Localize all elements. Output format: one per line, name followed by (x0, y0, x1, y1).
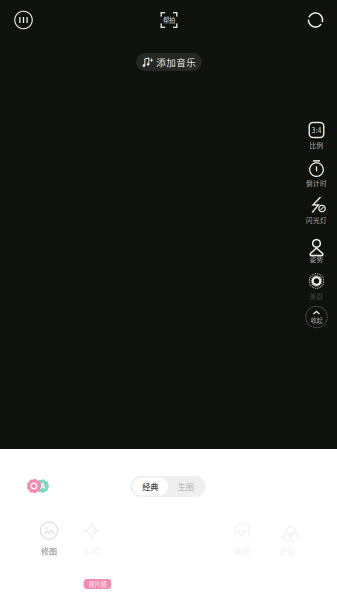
button[interactable]: 倒计时 (297, 158, 335, 190)
staticText: 姿势 (309, 254, 323, 264)
staticText: 生图 (178, 481, 194, 492)
staticText: 比例 (309, 140, 323, 150)
staticText: 美颜 (234, 545, 250, 557)
staticText: 3:4 (311, 125, 321, 135)
button[interactable]: 收起 (301, 303, 331, 331)
staticText: 闪光灯 (306, 215, 327, 225)
staticText: 收起 (310, 315, 322, 324)
staticText: 修图 (41, 545, 57, 557)
button[interactable]: 生图 (168, 478, 203, 495)
staticText: 倒计时 (306, 178, 327, 188)
staticText: A (40, 482, 45, 491)
button[interactable]: 帮拍 (150, 3, 188, 37)
button[interactable]: 添加音乐 (136, 53, 202, 71)
button[interactable]: Beauty settings (4, 3, 42, 37)
staticText: 滤镜 (279, 545, 295, 557)
button[interactable]: 经典 (132, 478, 168, 495)
button[interactable]: Flip camera (296, 3, 334, 37)
button[interactable]: 修图 (26, 518, 72, 560)
button[interactable]: 3:4 (297, 120, 335, 152)
staticText: 添加音乐 (156, 55, 196, 69)
staticText: 经典 (142, 481, 158, 492)
staticText: 美颜 (309, 291, 323, 301)
button[interactable]: 美颜 (297, 271, 335, 303)
button[interactable]: 姿势 (297, 234, 335, 266)
button[interactable]: Beauty effects (23, 479, 45, 493)
button[interactable]: 闪光灯 (297, 195, 335, 227)
staticText: 原片感 (88, 579, 106, 589)
staticText: 帮拍 (163, 15, 175, 24)
